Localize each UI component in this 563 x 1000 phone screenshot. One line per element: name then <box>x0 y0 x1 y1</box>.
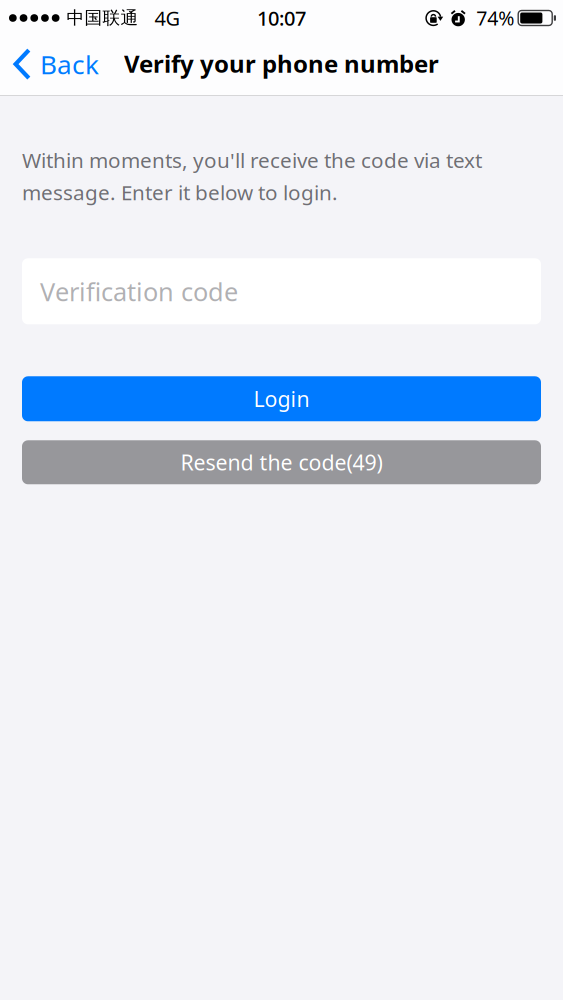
button[interactable]: Resend the code(49) <box>22 440 541 484</box>
staticText: Verify your phone number <box>124 47 439 80</box>
staticText: message. Enter it below to login. <box>22 178 338 206</box>
staticText: Login <box>253 384 309 413</box>
button[interactable]: Verification code <box>22 258 541 324</box>
staticText: 中国联通 <box>66 7 138 29</box>
button[interactable]: Back <box>0 36 111 96</box>
staticText: Back <box>40 46 99 82</box>
staticText: Verification code <box>40 274 238 308</box>
staticText: Within moments, you'll receive the code … <box>22 146 482 174</box>
staticText: 74% <box>476 5 514 31</box>
staticText: 4G <box>154 4 180 32</box>
staticText: Resend the code(49) <box>180 448 382 477</box>
staticText: 10:07 <box>257 4 306 32</box>
button[interactable]: Login <box>22 376 541 421</box>
